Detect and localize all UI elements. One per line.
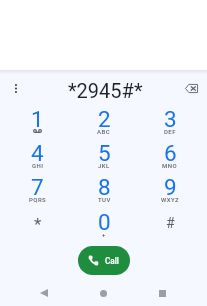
staticText: WXYZ xyxy=(161,196,180,203)
staticText: *2945#* xyxy=(68,79,143,102)
staticText: 2 xyxy=(98,106,111,132)
button[interactable]: * xyxy=(4,209,71,244)
button[interactable]: 4 xyxy=(4,140,71,174)
staticText: + xyxy=(102,231,106,238)
button[interactable]: Call xyxy=(78,246,130,275)
staticText: MNO xyxy=(162,162,178,169)
staticText: 7 xyxy=(31,174,44,200)
staticText: * xyxy=(34,214,42,234)
staticText: 3 xyxy=(164,106,177,132)
button[interactable]: Backspace xyxy=(175,73,207,103)
button[interactable]: # xyxy=(137,209,203,244)
staticText: TUV xyxy=(98,196,111,203)
staticText: Call xyxy=(105,256,119,266)
staticText: PQRS xyxy=(29,196,47,203)
button[interactable]: Back xyxy=(24,282,64,304)
staticText: 5 xyxy=(98,140,111,166)
button[interactable]: Recent apps xyxy=(142,282,182,304)
button[interactable]: 2 xyxy=(71,106,137,140)
button[interactable]: 0 xyxy=(71,209,137,244)
button[interactable]: 8 xyxy=(71,174,137,209)
staticText: # xyxy=(166,215,175,231)
button[interactable]: 9 xyxy=(137,174,203,209)
button[interactable]: 6 xyxy=(137,140,203,174)
button[interactable]: 7 xyxy=(4,174,71,209)
staticText: 4 xyxy=(31,140,44,166)
button[interactable]: Home xyxy=(83,282,123,304)
staticText: DEF xyxy=(164,128,176,135)
staticText: 9 xyxy=(164,174,177,200)
staticText: 8 xyxy=(98,174,111,200)
button[interactable]: 5 xyxy=(71,140,137,174)
staticText: JKL xyxy=(98,162,110,169)
button[interactable]: 3 xyxy=(137,106,203,140)
staticText: 0 xyxy=(98,209,111,235)
button[interactable]: More options xyxy=(0,73,29,103)
staticText: ABC xyxy=(97,128,111,135)
button[interactable]: 1 xyxy=(4,106,71,140)
staticText: 6 xyxy=(164,140,177,166)
staticText: 1 xyxy=(31,106,44,132)
staticText: GHI xyxy=(32,162,44,169)
